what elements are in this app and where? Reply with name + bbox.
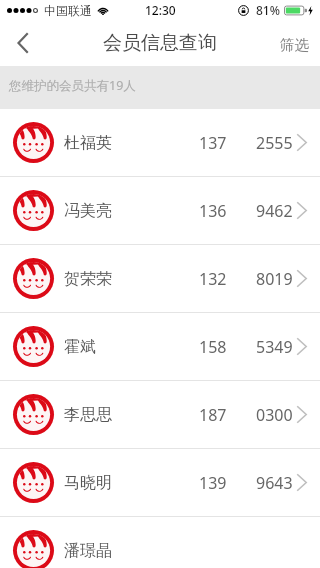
staticText: 潘璟晶 [64,541,112,561]
button[interactable]: 冯美亮 [0,177,320,244]
staticText: 137 [199,132,227,154]
staticText: 会员信息查询 [103,31,217,55]
staticText: 8019 [256,268,293,290]
staticText: 5349 [256,336,293,358]
staticText: 158 [199,336,227,358]
staticText: 马晓明 [64,473,112,493]
button[interactable]: Back [0,21,44,65]
button[interactable]: 潘璟晶 [0,517,320,568]
button[interactable]: 筛选 [280,36,309,54]
staticText: 贺荣荣 [64,269,112,289]
button[interactable]: 霍斌 [0,313,320,380]
staticText: 冯美亮 [64,201,112,221]
staticText: 2555 [256,132,293,154]
staticText: 李思思 [64,405,112,425]
staticText: 您维护的会员共有19人 [9,77,136,94]
button[interactable]: 杜福英 [0,109,320,176]
staticText: 9643 [256,472,293,494]
staticText: 筛选 [280,36,309,54]
staticText: 0300 [256,404,293,426]
staticText: 139 [199,472,227,494]
staticText: 81% [256,2,280,18]
staticText: 132 [199,268,227,290]
staticText: 136 [199,200,227,222]
staticText: 中国联通 [44,3,92,18]
staticText: 杜福英 [64,133,112,153]
staticText: 12:30 [145,2,176,18]
button[interactable]: 李思思 [0,381,320,448]
staticText: 霍斌 [64,337,96,357]
staticText: 9462 [256,200,293,222]
button[interactable]: 贺荣荣 [0,245,320,312]
button[interactable]: 马晓明 [0,449,320,516]
staticText: 187 [199,404,227,426]
